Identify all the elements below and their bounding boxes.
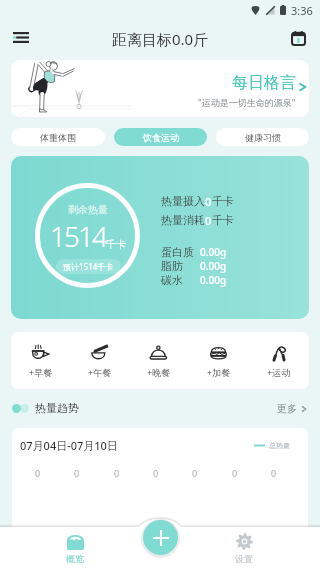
staticText: 0 xyxy=(35,467,41,479)
button[interactable]: 概览 xyxy=(56,533,94,564)
staticText: 预计1514千卡 xyxy=(63,261,114,272)
staticText: 热量趋势 xyxy=(35,401,79,415)
staticText: 热量消耗 xyxy=(161,213,205,227)
staticText: 距离目标0.0斤 xyxy=(112,29,209,49)
button[interactable]: +早餐 xyxy=(11,332,70,389)
button[interactable]: Calendar xyxy=(283,23,313,53)
staticText: +加餐 xyxy=(207,366,231,378)
staticText: 总热量 xyxy=(269,441,290,450)
button[interactable]: +晚餐 xyxy=(129,332,189,389)
staticText: 0 xyxy=(153,467,159,479)
staticText: +早餐 xyxy=(29,366,53,378)
staticText: 1514 xyxy=(50,217,106,255)
staticText: 0 xyxy=(192,467,198,479)
staticText: 更多 xyxy=(277,402,297,415)
staticText: 概览 xyxy=(66,553,84,564)
staticText: 0.00g xyxy=(200,245,227,259)
staticText: 剩余热量 xyxy=(68,203,108,216)
staticText: 千卡 xyxy=(106,238,126,251)
staticText: 碳水 xyxy=(161,273,200,287)
button[interactable]: 健康习惯 xyxy=(216,128,309,146)
staticText: 体重体围 xyxy=(40,132,76,143)
staticText: 千卡 xyxy=(212,194,234,208)
staticText: 千卡 xyxy=(212,213,234,227)
staticText: 0.00g xyxy=(200,259,227,273)
button[interactable]: +运动 xyxy=(249,332,309,389)
staticText: 0 xyxy=(74,467,80,479)
staticText: +晚餐 xyxy=(147,366,171,378)
button[interactable]: 每日格言 xyxy=(11,60,309,117)
staticText: 0 xyxy=(205,194,212,209)
staticText: 07月04日-07月10日 xyxy=(20,438,118,453)
staticText: 0.00g xyxy=(200,273,227,287)
button[interactable]: +午餐 xyxy=(70,332,129,389)
staticText: 饮食运动 xyxy=(143,132,179,143)
button[interactable]: 设置 xyxy=(225,533,263,564)
button[interactable]: Add xyxy=(143,520,178,555)
button[interactable]: Menu xyxy=(6,22,36,52)
staticText: +午餐 xyxy=(88,366,112,378)
staticText: +运动 xyxy=(267,366,291,378)
button[interactable]: 更多 xyxy=(277,402,308,415)
staticText: "运动是一切生命的源泉" xyxy=(198,96,296,108)
staticText: 0 xyxy=(232,467,238,479)
button[interactable]: +加餐 xyxy=(189,332,249,389)
staticText: 0 xyxy=(271,467,277,479)
staticText: 设置 xyxy=(235,553,253,564)
staticText: 0 xyxy=(205,213,212,228)
button[interactable]: 体重体围 xyxy=(11,128,105,146)
staticText: 0 xyxy=(114,467,120,479)
button[interactable]: 饮食运动 xyxy=(114,128,207,146)
staticText: 蛋白质 xyxy=(161,245,200,259)
staticText: 热量摄入 xyxy=(161,194,205,208)
staticText: 脂肪 xyxy=(161,259,200,273)
staticText: 每日格言 xyxy=(232,73,296,93)
staticText: 健康习惯 xyxy=(245,132,281,143)
staticText: 3:36 xyxy=(291,3,313,18)
